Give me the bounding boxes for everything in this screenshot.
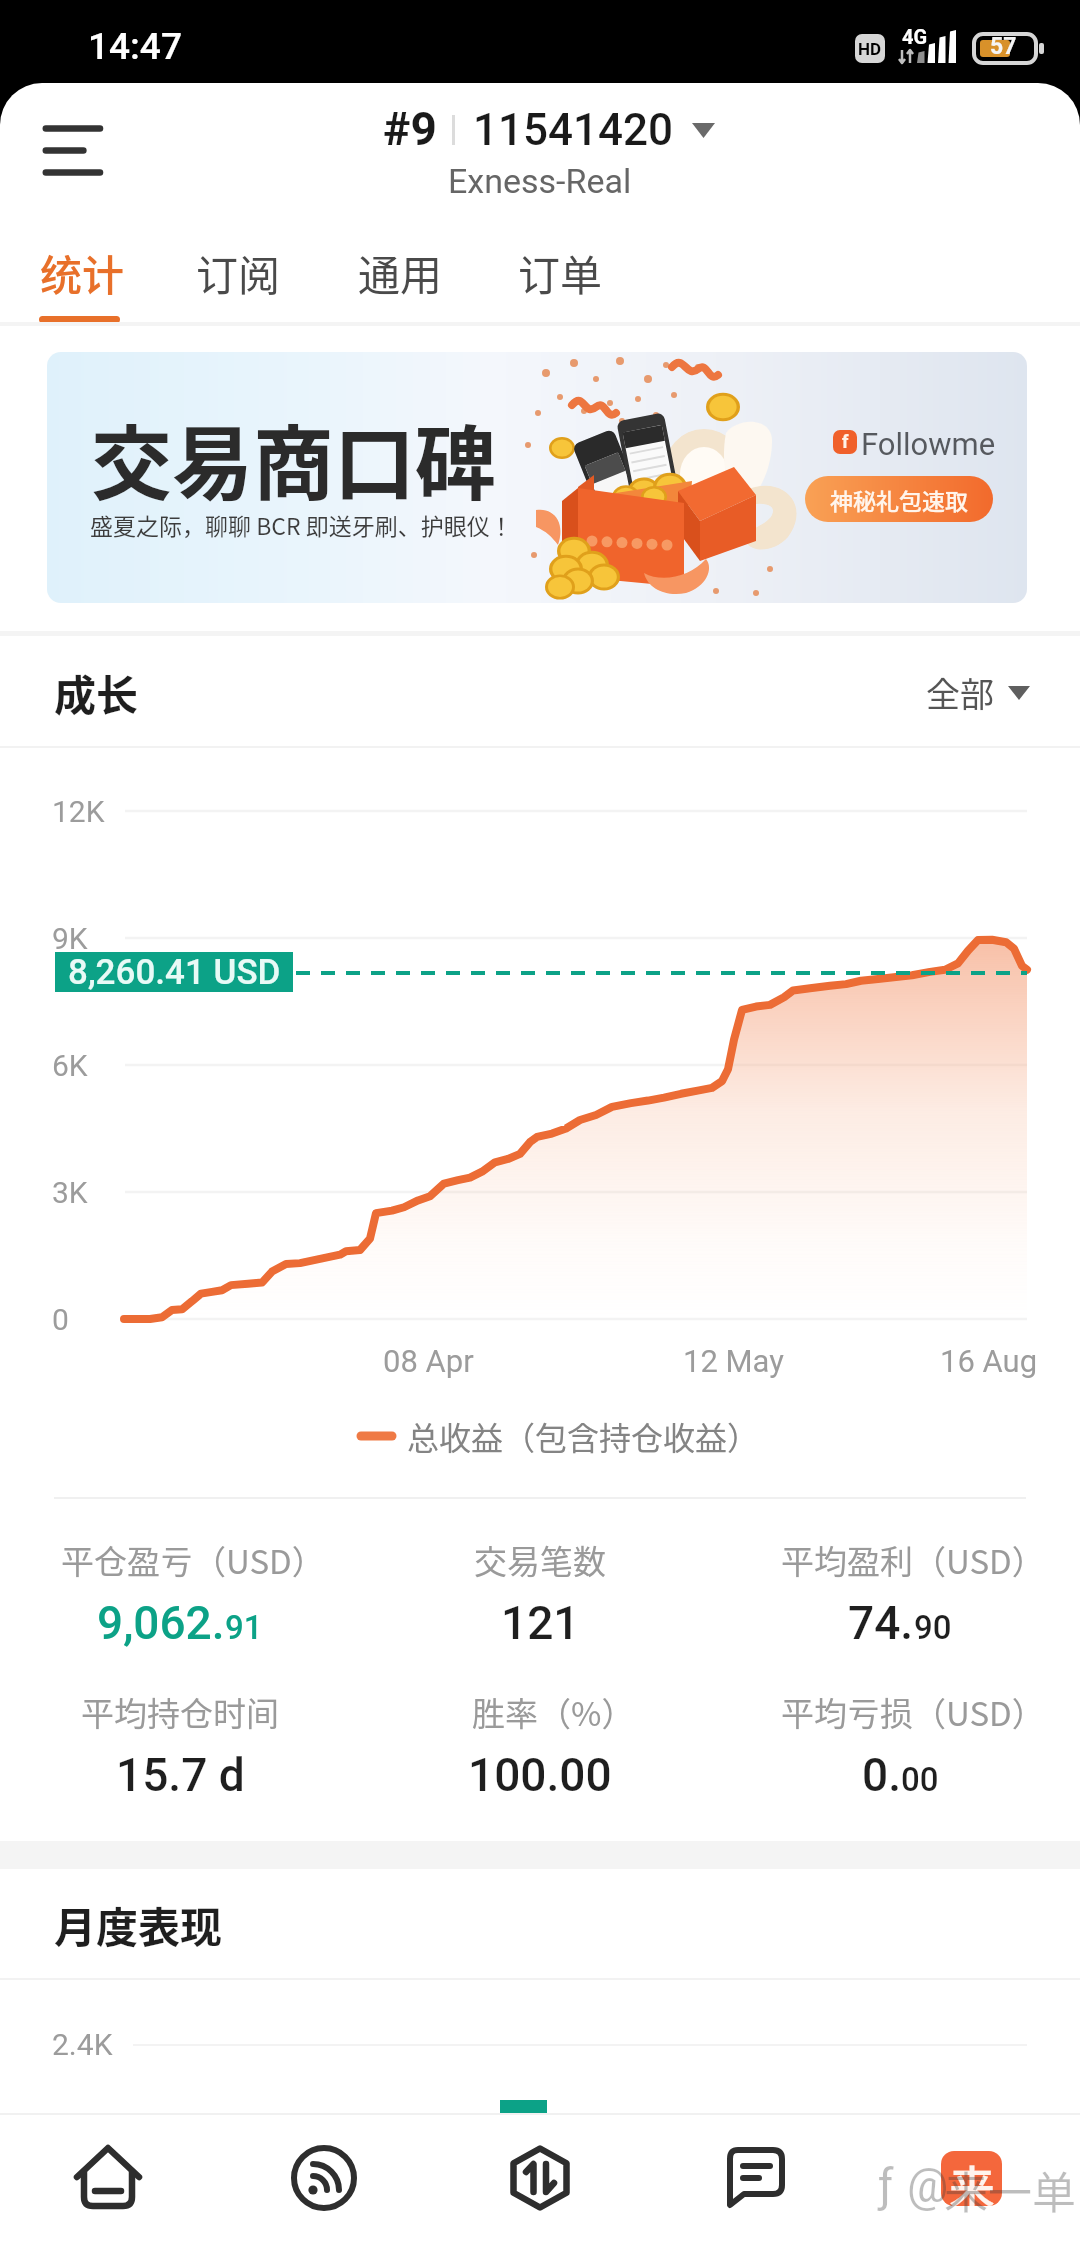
staticText: 121 xyxy=(501,1596,580,1650)
staticText: HD xyxy=(858,39,882,59)
staticText: 2.4K xyxy=(52,2027,113,2062)
button[interactable]: 神秘礼包速取 xyxy=(805,476,993,522)
staticText: 交易笔数 xyxy=(474,1536,606,1584)
staticText: 胜率（%） xyxy=(472,1688,635,1736)
button[interactable]: Menu xyxy=(22,105,124,193)
button[interactable]: 订单 xyxy=(506,233,615,311)
staticText: 来 xyxy=(949,2151,995,2206)
staticText: 08 Apr xyxy=(383,1343,474,1379)
staticText: 12 May xyxy=(683,1343,784,1379)
staticText: 成长 xyxy=(54,662,139,723)
staticText: 90 xyxy=(914,1608,952,1647)
staticText: 订单 xyxy=(518,242,603,303)
staticText: 16 Aug xyxy=(940,1343,1038,1379)
button[interactable]: 订阅 xyxy=(184,233,293,311)
staticText: 月度表现 xyxy=(54,1894,223,1955)
button[interactable]: 交易商口碑 xyxy=(47,352,1027,603)
staticText: @ xyxy=(907,2159,949,2213)
staticText: 57 xyxy=(990,33,1017,60)
staticText: 总收益（包含持仓收益） xyxy=(407,1413,760,1459)
staticText: 全部 xyxy=(926,668,994,717)
staticText: f xyxy=(842,431,849,452)
staticText: 通用 xyxy=(358,242,443,303)
staticText: 11541420 xyxy=(473,104,674,156)
staticText: 0 xyxy=(52,1302,69,1337)
staticText: 100.00 xyxy=(468,1748,612,1802)
staticText: 平均亏损（USD） xyxy=(781,1688,1045,1736)
staticText: 6K xyxy=(52,1048,88,1083)
staticText: 9,062. xyxy=(97,1596,225,1650)
staticText: 神秘礼包速取 xyxy=(830,483,968,516)
staticText: 3K xyxy=(52,1175,88,1210)
button[interactable]: Feed xyxy=(216,2113,432,2243)
staticText: #9 xyxy=(383,102,437,156)
button[interactable]: 总收益（包含持仓收益） xyxy=(361,1413,760,1459)
staticText: 9K xyxy=(52,921,88,956)
staticText: 来一单 xyxy=(944,2158,1076,2222)
staticText: 平均盈利（USD） xyxy=(781,1536,1045,1584)
staticText: Exness-Real xyxy=(448,161,632,201)
staticText: 平均持仓时间 xyxy=(81,1688,279,1736)
staticText: 12K xyxy=(52,794,105,829)
staticText: 4G xyxy=(902,25,928,48)
staticText: 91 xyxy=(225,1608,263,1647)
staticText: 74. xyxy=(848,1596,914,1650)
staticText: 交易商口碑 xyxy=(91,399,497,516)
staticText: 盛夏之际，聊聊 BCR 即送牙刷、护眼仪！ xyxy=(90,508,513,541)
staticText: 统计 xyxy=(40,242,125,303)
staticText: ƒ xyxy=(878,2159,894,2213)
button[interactable]: #9 xyxy=(383,103,715,157)
staticText: Followme xyxy=(861,426,996,462)
staticText: 订阅 xyxy=(196,242,281,303)
button[interactable]: Home xyxy=(0,2113,216,2243)
button[interactable]: 全部 xyxy=(922,668,1034,717)
button[interactable]: Trade xyxy=(432,2113,648,2243)
staticText: 平仓盈亏（USD） xyxy=(61,1536,325,1584)
staticText: 14:47 xyxy=(88,25,182,68)
staticText: 00 xyxy=(901,1760,939,1799)
staticText: 8,260.41 USD xyxy=(68,952,281,992)
staticText: 0. xyxy=(862,1748,901,1802)
button[interactable]: Messages xyxy=(648,2113,864,2243)
button[interactable]: 通用 xyxy=(346,233,455,311)
button[interactable]: 统计 xyxy=(28,233,137,311)
button[interactable]: Profile xyxy=(864,2113,1080,2243)
staticText: 15.7 d xyxy=(116,1748,245,1802)
